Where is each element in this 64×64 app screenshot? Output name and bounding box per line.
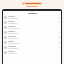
button[interactable] — [3, 50, 61, 55]
button[interactable] — [3, 20, 61, 25]
button[interactable] — [3, 35, 61, 40]
button[interactable] — [3, 40, 61, 45]
button[interactable] — [3, 45, 61, 50]
button[interactable] — [3, 25, 61, 30]
button[interactable] — [3, 30, 61, 35]
button[interactable] — [3, 15, 61, 20]
button[interactable] — [22, 2, 42, 5]
button[interactable]: Search — [3, 11, 61, 15]
